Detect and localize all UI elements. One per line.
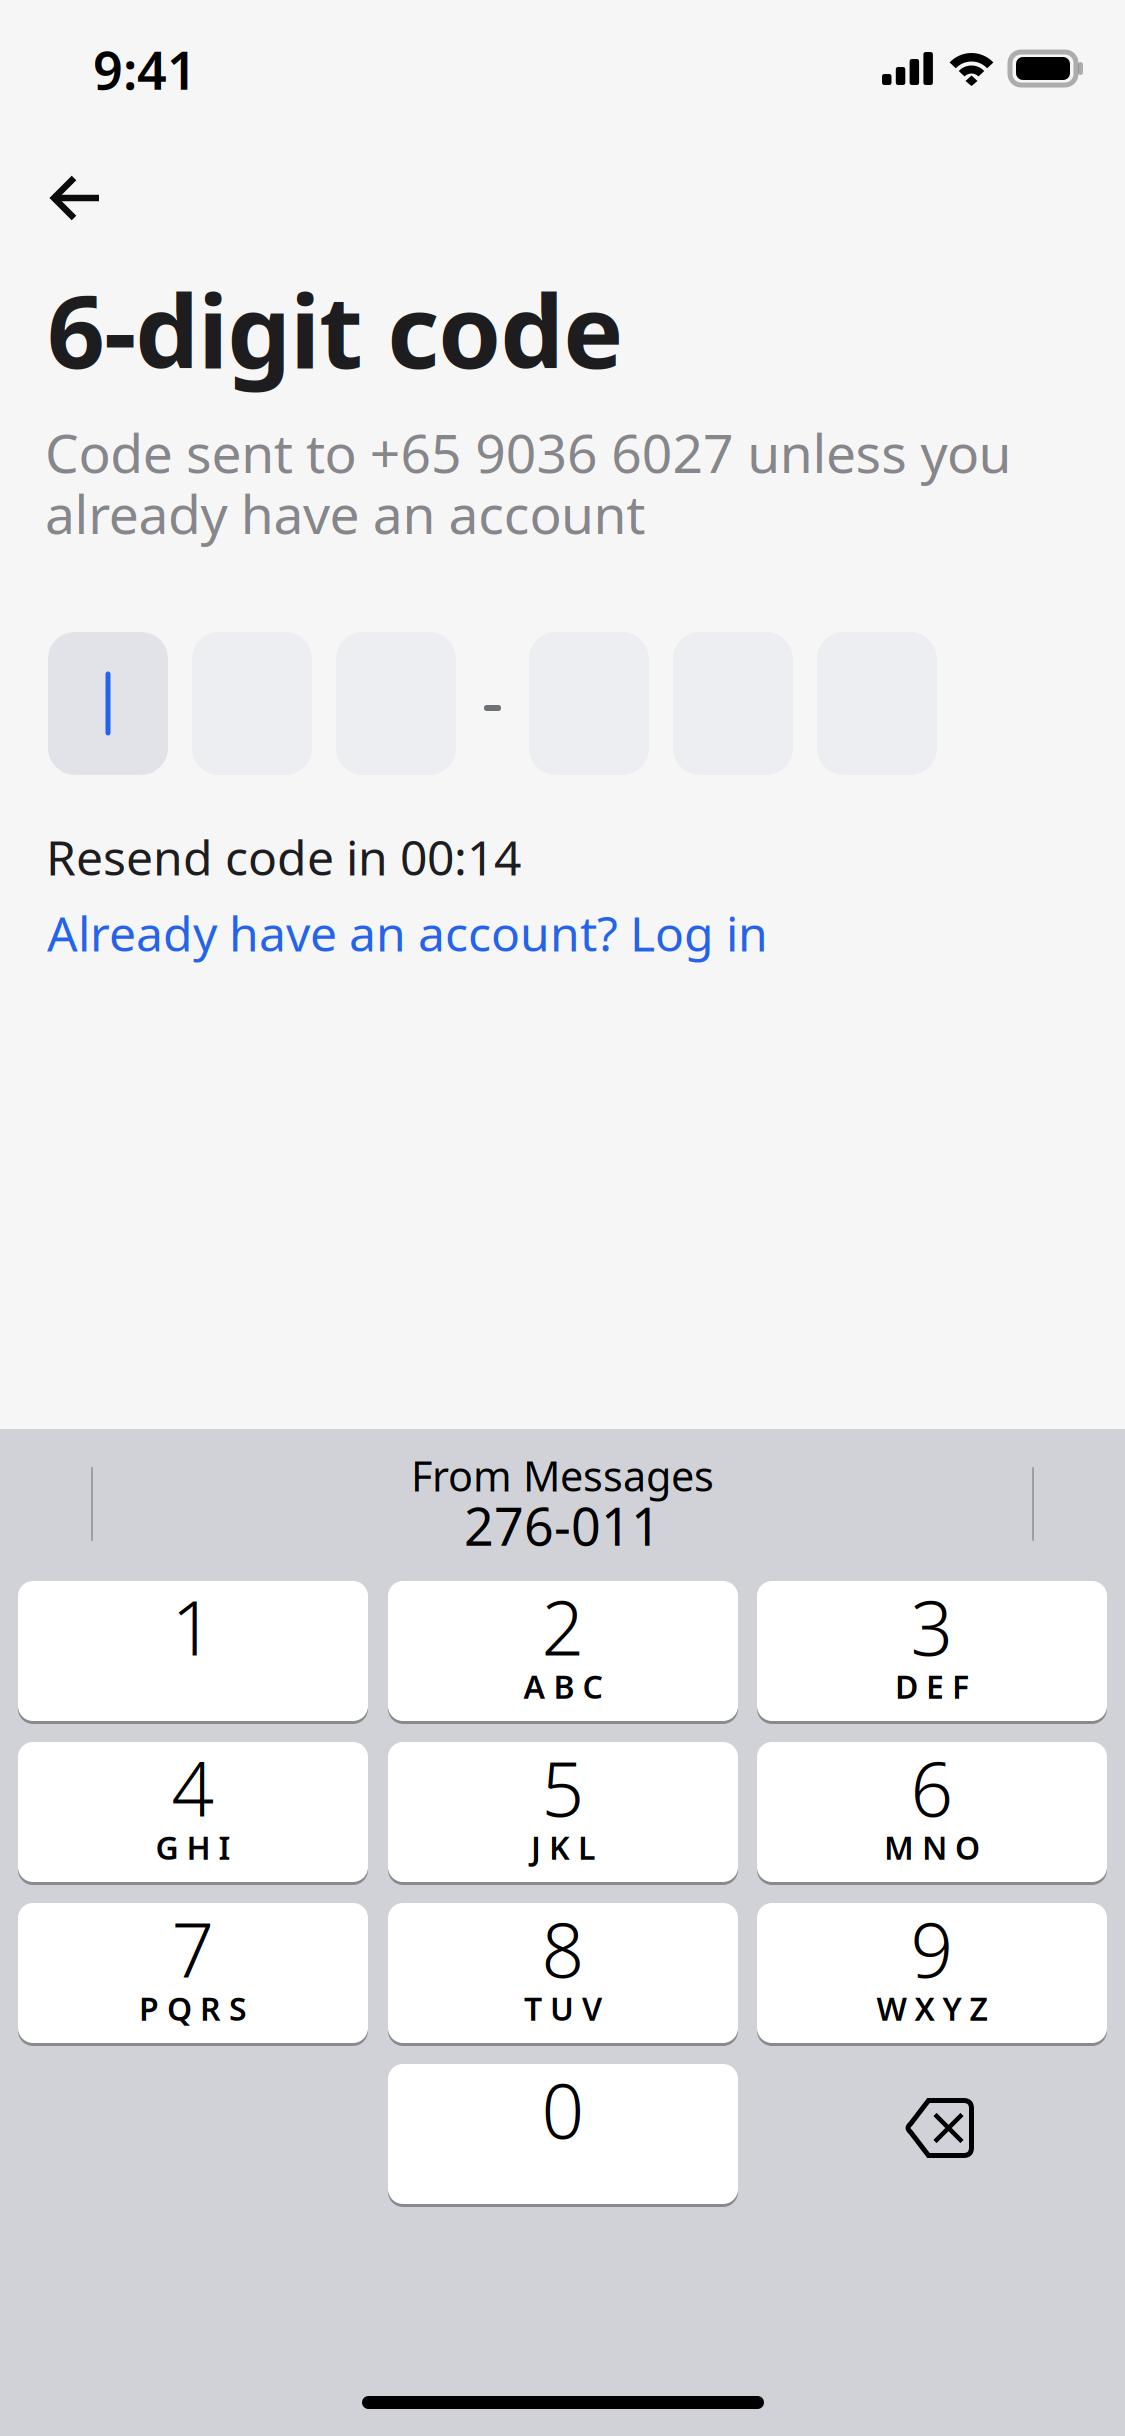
staticText: G H I xyxy=(155,1826,230,1868)
button[interactable]: Delete xyxy=(757,2064,1107,2207)
staticText: 3 xyxy=(910,1577,953,1676)
staticText: 2 xyxy=(541,1577,584,1676)
button[interactable]: Back xyxy=(0,0,150,110)
staticText: 4 xyxy=(171,1738,214,1837)
button[interactable]: 1 xyxy=(18,1581,368,1724)
staticText: 8 xyxy=(541,1899,584,1998)
staticText: A B C xyxy=(523,1665,602,1707)
button[interactable]: 4 xyxy=(18,1742,368,1885)
staticText: P Q R S xyxy=(139,1987,247,2029)
staticText: 9 xyxy=(910,1899,953,1998)
staticText: W X Y Z xyxy=(876,1987,987,2029)
staticText: 5 xyxy=(541,1738,584,1837)
staticText: D E F xyxy=(895,1665,969,1707)
staticText: Code sent to +65 9036 6027 unless you al… xyxy=(45,417,1012,549)
button[interactable]: 7 xyxy=(18,1903,368,2046)
staticText: Already have an account? Log in xyxy=(47,901,768,965)
button[interactable]: Already have an account? Log in xyxy=(0,0,721,64)
button[interactable]: 2 xyxy=(388,1581,738,1724)
staticText: 0 xyxy=(541,2060,584,2159)
button[interactable]: 9 xyxy=(757,1903,1107,2046)
staticText: From Messages xyxy=(411,1448,714,1503)
staticText: M N O xyxy=(884,1826,980,1868)
staticText: 1 xyxy=(171,1577,214,1676)
staticText: T U V xyxy=(524,1987,602,2029)
staticText: 7 xyxy=(171,1899,214,1998)
button[interactable]: 8 xyxy=(388,1903,738,2046)
button[interactable]: 5 xyxy=(388,1742,738,1885)
button[interactable]: 0 xyxy=(388,2064,738,2207)
staticText: J K L xyxy=(531,1826,595,1868)
staticText: 6-digit code xyxy=(47,262,623,397)
staticText: 276-011 xyxy=(464,1491,661,1560)
staticText: Resend code in 00:14 xyxy=(46,825,521,889)
staticText: 9:41 xyxy=(93,35,197,104)
button[interactable]: 6 xyxy=(757,1742,1107,1885)
button[interactable]: 3 xyxy=(757,1581,1107,1724)
staticText: 6 xyxy=(910,1738,953,1837)
